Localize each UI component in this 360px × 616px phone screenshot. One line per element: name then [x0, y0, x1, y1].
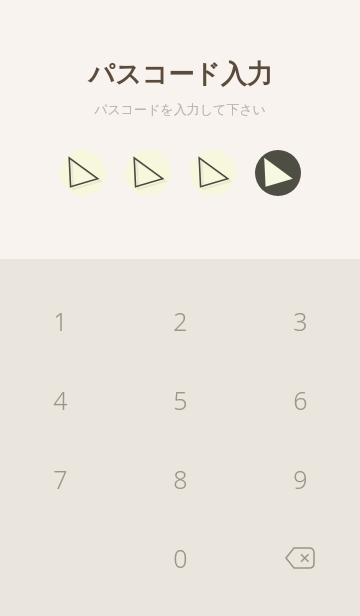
- staticText: 9: [293, 462, 308, 496]
- button[interactable]: 9: [240, 439, 360, 518]
- button[interactable]: 7: [0, 439, 120, 518]
- button[interactable]: 0: [120, 518, 240, 597]
- button[interactable]: 8: [120, 439, 240, 518]
- button[interactable]: 1: [0, 281, 120, 360]
- button[interactable]: Backspace: [240, 518, 360, 597]
- staticText: 0: [173, 541, 188, 575]
- staticText: 1: [53, 304, 68, 338]
- button[interactable]: 4: [0, 360, 120, 439]
- button[interactable]: 5: [120, 360, 240, 439]
- staticText: 3: [293, 304, 308, 338]
- staticText: 7: [53, 462, 68, 496]
- button[interactable]: 6: [240, 360, 360, 439]
- staticText: 4: [53, 383, 68, 417]
- staticText: 8: [173, 462, 188, 496]
- staticText: パスコードを入力して下さい: [94, 101, 266, 117]
- staticText: パスコード入力: [88, 58, 273, 91]
- button[interactable]: 2: [120, 281, 240, 360]
- staticText: 5: [173, 383, 188, 417]
- button[interactable]: 3: [240, 281, 360, 360]
- staticText: 6: [293, 383, 308, 417]
- staticText: 2: [173, 304, 188, 338]
